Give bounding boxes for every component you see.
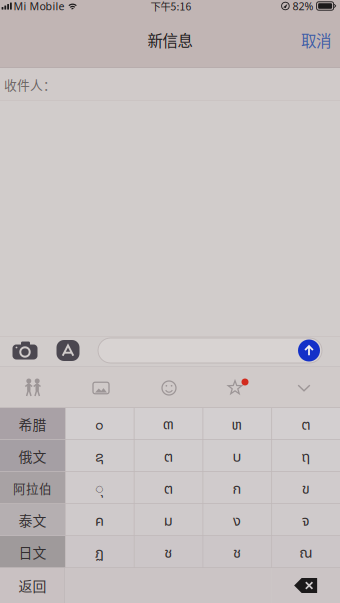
button[interactable]: ຫ <box>202 408 271 440</box>
button[interactable]: ຓ <box>134 408 203 440</box>
staticText: 取消 <box>301 29 331 51</box>
button[interactable]: ຊ <box>65 440 134 472</box>
button[interactable]: ง <box>202 504 271 536</box>
staticText: ฏ <box>95 542 104 562</box>
button[interactable]: ณ <box>271 536 340 568</box>
button[interactable]: ค <box>65 504 134 536</box>
button[interactable]: 俄文 <box>0 440 65 472</box>
button[interactable]: Memoji stickers <box>2 367 64 407</box>
button[interactable]: Photos <box>70 368 132 408</box>
button[interactable]: Delete <box>271 568 340 603</box>
button[interactable]: 取消 <box>292 18 340 62</box>
staticText: ຕ <box>164 446 173 466</box>
staticText: ค <box>95 510 104 530</box>
staticText: 希腊 <box>18 414 46 434</box>
button[interactable]: 阿拉伯 <box>0 472 65 504</box>
staticText: 82% <box>293 0 314 13</box>
staticText: ຕ <box>164 478 173 498</box>
staticText: ຫ <box>231 414 242 434</box>
staticText: 俄文 <box>18 446 46 466</box>
staticText: ณ <box>299 542 312 562</box>
staticText: 收件人： <box>4 75 56 94</box>
button[interactable]: ม <box>134 504 203 536</box>
staticText: จ <box>302 510 310 530</box>
button[interactable]: 希腊 <box>0 408 65 440</box>
button[interactable]: ຸ <box>65 472 134 504</box>
button[interactable]: ຕ <box>134 440 203 472</box>
staticText: ຊ <box>95 446 104 466</box>
button[interactable]: ช <box>202 536 271 568</box>
button[interactable]: ຕ <box>134 472 203 504</box>
staticText: ຕ <box>301 414 310 434</box>
button[interactable]: ฏ <box>65 536 134 568</box>
staticText: Mi Mobile <box>13 0 64 13</box>
button[interactable]: 返回 <box>0 568 65 603</box>
staticText: o <box>95 414 104 434</box>
staticText: ข <box>302 478 310 498</box>
button[interactable]: App Store <box>53 336 83 364</box>
button[interactable]: o <box>65 408 134 440</box>
button[interactable]: Collapse app drawer <box>273 368 335 408</box>
staticText: 日文 <box>18 542 46 562</box>
button[interactable]: 日文 <box>0 536 65 568</box>
button[interactable]: Camera <box>9 336 41 364</box>
button[interactable]: ບ <box>202 440 271 472</box>
staticText: 阿拉伯 <box>13 479 52 497</box>
staticText: ก <box>232 478 241 498</box>
staticText: 返回 <box>18 575 46 596</box>
button[interactable]: 泰文 <box>0 504 65 536</box>
button[interactable]: จ <box>271 504 340 536</box>
staticText: ຸ <box>95 478 104 498</box>
button[interactable]: Emoji <box>138 368 200 408</box>
staticText: ບ <box>232 446 241 466</box>
staticText: ช <box>164 542 172 562</box>
staticText: 新信息 <box>147 29 192 51</box>
staticText: ช <box>233 542 241 562</box>
button[interactable]: ช <box>134 536 203 568</box>
staticText: 泰文 <box>18 510 46 530</box>
staticText: ม <box>164 510 173 530</box>
button[interactable]: ข <box>271 472 340 504</box>
staticText: ง <box>233 510 241 530</box>
button[interactable]: ຖ <box>271 440 340 472</box>
button[interactable]: 收件人： <box>0 68 340 101</box>
staticText: ຖ <box>301 446 310 466</box>
button[interactable]: Send <box>296 337 322 363</box>
button[interactable]: ຕ <box>271 408 340 440</box>
button[interactable]: Favourites <box>207 367 269 407</box>
staticText: ຓ <box>163 412 174 436</box>
staticText: 下午5:16 <box>150 0 191 14</box>
button[interactable]: ก <box>202 472 271 504</box>
